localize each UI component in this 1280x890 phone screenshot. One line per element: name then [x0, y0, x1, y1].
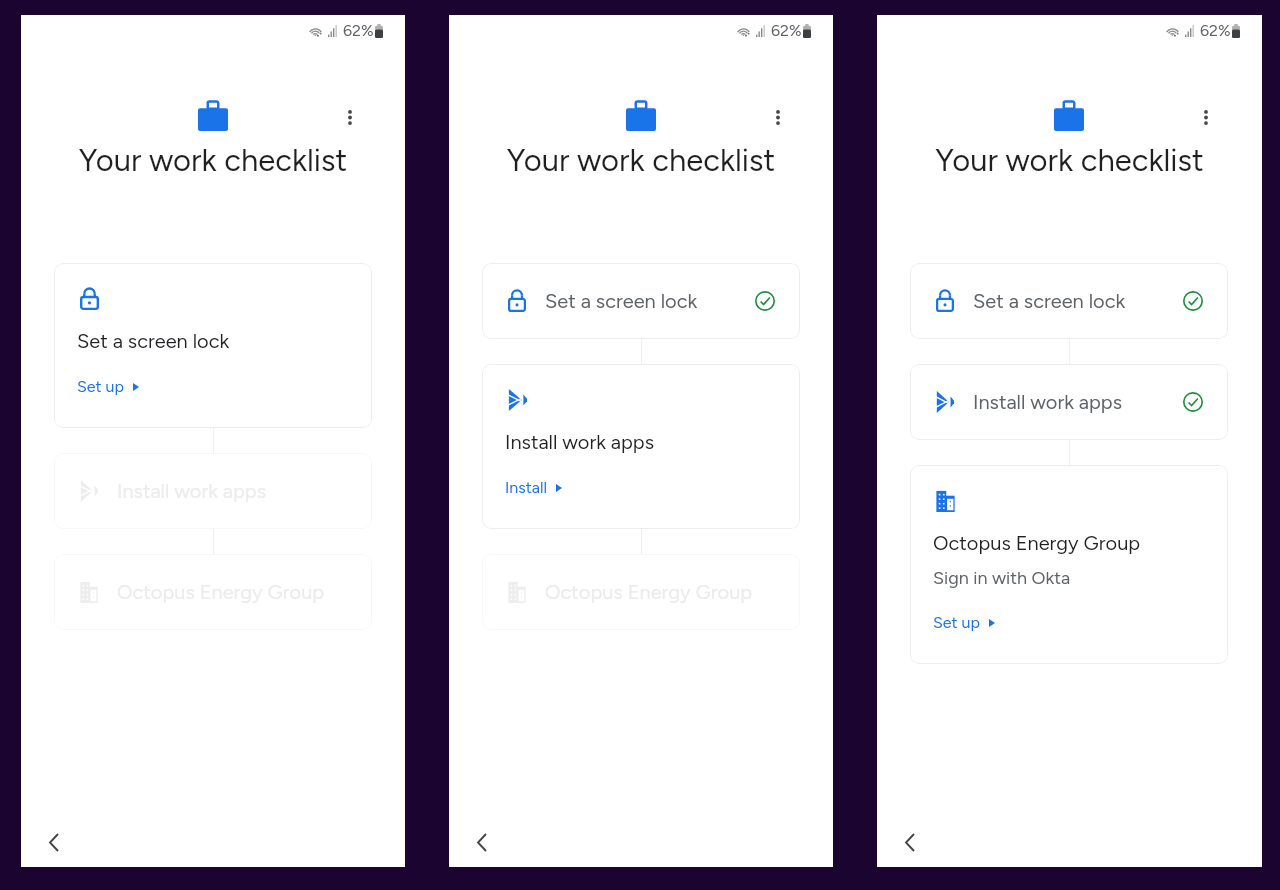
staticText: Octopus Energy Group	[933, 531, 1141, 555]
staticText: Your work checklist	[449, 142, 833, 179]
button[interactable]: More options	[1186, 97, 1226, 137]
button[interactable]: Install	[505, 478, 562, 497]
button[interactable]: Octopus Energy Group	[54, 554, 372, 630]
button[interactable]: Set a screen lock	[910, 263, 1228, 339]
staticText: Sign in with Okta	[933, 567, 1071, 589]
button[interactable]: Set a screen lock	[482, 263, 800, 339]
staticText: Install work apps	[505, 430, 654, 454]
button[interactable]: Back	[34, 822, 74, 862]
button[interactable]: Back	[462, 822, 502, 862]
button[interactable]: Back	[890, 822, 930, 862]
staticText: Your work checklist	[21, 142, 405, 179]
staticText: Install	[505, 478, 547, 497]
staticText: Set up	[77, 377, 124, 396]
button[interactable]: Install work apps	[910, 364, 1228, 440]
staticText: Install work apps	[117, 479, 266, 503]
button[interactable]: Install work apps	[54, 453, 372, 529]
button[interactable]: More options	[330, 97, 370, 137]
button[interactable]: Install work apps	[482, 364, 800, 529]
staticText: 62%	[1200, 21, 1231, 40]
button[interactable]: Set up	[77, 377, 139, 396]
staticText: Set a screen lock	[545, 289, 698, 313]
staticText: 62%	[771, 21, 802, 40]
staticText: Your work checklist	[877, 142, 1262, 179]
staticText: Set a screen lock	[973, 289, 1126, 313]
button[interactable]: Set up	[933, 613, 995, 632]
staticText: Set a screen lock	[77, 329, 230, 353]
button[interactable]: Octopus Energy Group	[910, 465, 1228, 664]
staticText: 62%	[343, 21, 374, 40]
button[interactable]: Set a screen lock	[54, 263, 372, 428]
button[interactable]: Octopus Energy Group	[482, 554, 800, 630]
button[interactable]: More options	[758, 97, 798, 137]
staticText: Set up	[933, 613, 980, 632]
staticText: Octopus Energy Group	[545, 580, 753, 604]
staticText: Octopus Energy Group	[117, 580, 325, 604]
staticText: Install work apps	[973, 390, 1122, 414]
